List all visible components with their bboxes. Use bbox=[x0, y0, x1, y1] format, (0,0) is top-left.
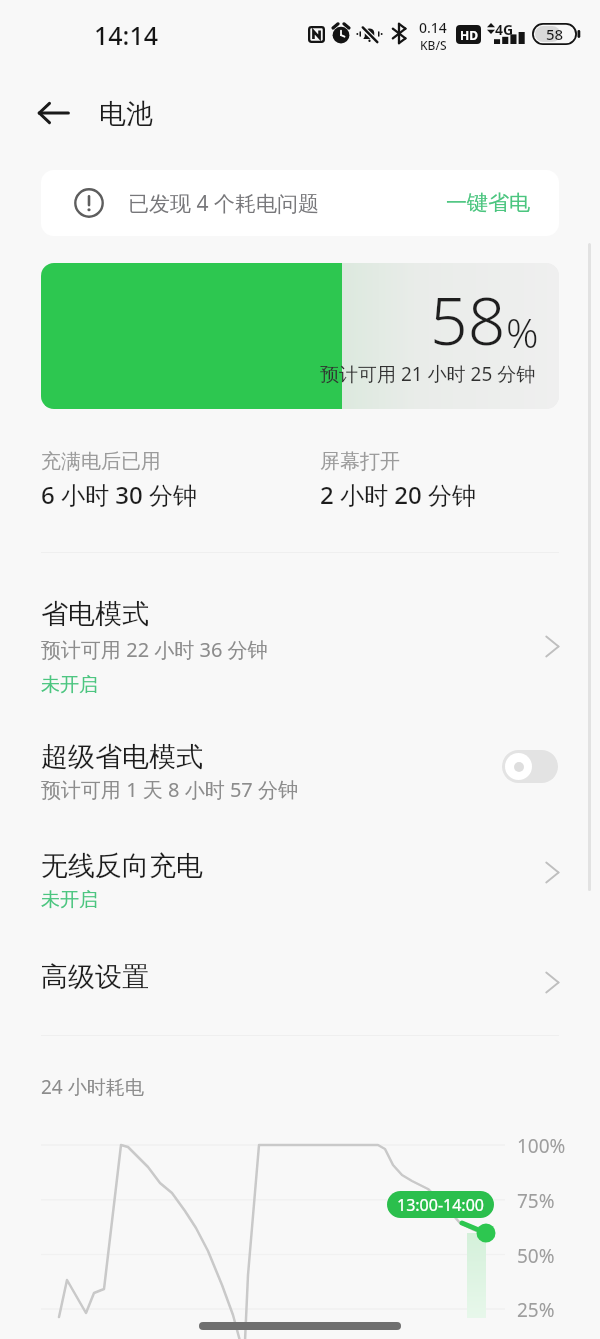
button[interactable]: 省电模式 bbox=[0, 553, 600, 691]
staticText: 预计可用 22 小时 36 分钟 bbox=[41, 636, 268, 663]
button[interactable]: 超级省电模式 bbox=[0, 691, 600, 803]
staticText: 14:14 bbox=[94, 18, 159, 52]
staticText: 无线反向充电 bbox=[41, 849, 203, 883]
staticText: 充满电后已用 bbox=[41, 449, 161, 474]
staticText: 0.14 bbox=[419, 18, 447, 37]
staticText: 未开启 bbox=[41, 888, 98, 912]
button[interactable]: 高级设置 bbox=[0, 913, 600, 1025]
staticText: 预计可用 1 天 8 小时 57 分钟 bbox=[41, 776, 298, 803]
button[interactable]: 已发现 4 个耗电问题 bbox=[41, 170, 559, 236]
staticText: % bbox=[506, 305, 539, 359]
button[interactable]: Back bbox=[28, 88, 78, 138]
staticText: 一键省电 bbox=[446, 190, 530, 216]
staticText: 75% bbox=[517, 1188, 555, 1214]
staticText: 4G bbox=[495, 20, 514, 39]
staticText: 省电模式 bbox=[41, 597, 149, 631]
staticText: 24 小时耗电 bbox=[41, 1074, 144, 1100]
staticText: KB/S bbox=[420, 37, 447, 53]
staticText: 未开启 bbox=[41, 673, 98, 697]
staticText: 2 小时 20 分钟 bbox=[320, 478, 476, 511]
button[interactable]: Toggle super power saving bbox=[502, 750, 558, 783]
staticText: 屏幕打开 bbox=[320, 449, 400, 474]
staticText: 已发现 4 个耗电问题 bbox=[128, 189, 319, 218]
staticText: 100% bbox=[517, 1133, 566, 1159]
staticText: 高级设置 bbox=[41, 960, 149, 994]
staticText: 58 bbox=[430, 274, 506, 364]
staticText: 50% bbox=[517, 1243, 555, 1269]
staticText: 6 小时 30 分钟 bbox=[41, 478, 197, 511]
staticText: 58 bbox=[546, 24, 564, 44]
staticText: 25% bbox=[517, 1297, 555, 1323]
staticText: 预计可用 21 小时 25 分钟 bbox=[320, 361, 536, 387]
button[interactable]: 无线反向充电 bbox=[0, 803, 600, 913]
staticText: 超级省电模式 bbox=[41, 740, 203, 774]
staticText: 电池 bbox=[99, 97, 153, 131]
staticText: 13:00-14:00 bbox=[397, 1194, 484, 1216]
staticText: HD bbox=[460, 27, 478, 43]
